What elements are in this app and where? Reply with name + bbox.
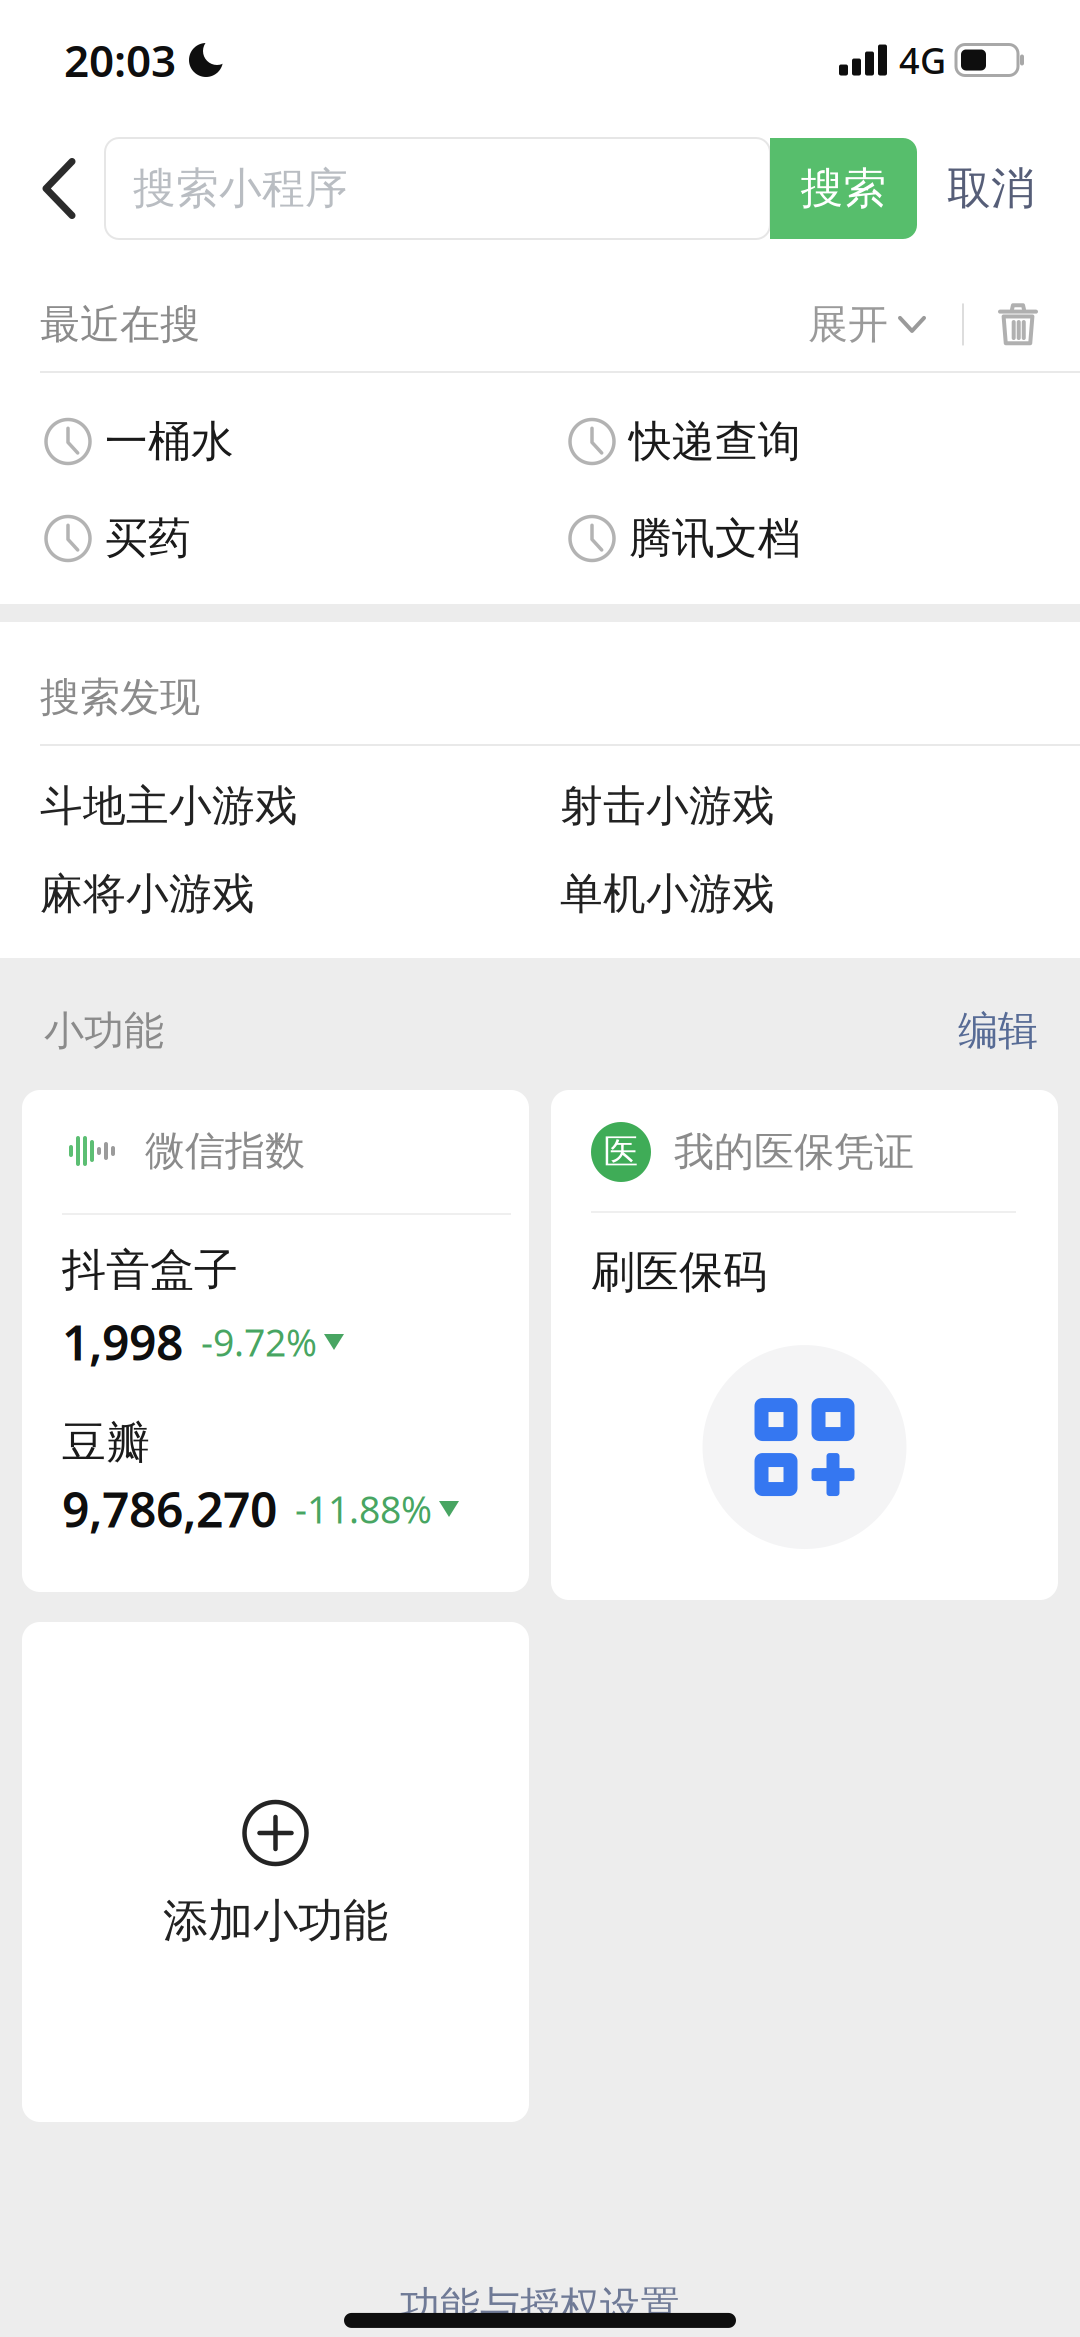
button[interactable]: 展开: [808, 300, 924, 349]
button[interactable]: 清空搜索记录: [1000, 304, 1080, 344]
staticText: 医: [603, 1131, 638, 1173]
staticText: 麻将小游戏: [40, 868, 255, 920]
staticText: 豆瓣: [62, 1416, 150, 1470]
staticText: 编辑: [958, 1006, 1038, 1055]
staticText: 斗地主小游戏: [40, 780, 298, 832]
button[interactable]: 单机小游戏: [560, 868, 775, 920]
staticText: 腾讯文档: [629, 512, 801, 565]
staticText: -9.72%: [201, 1317, 317, 1367]
staticText: 功能与授权设置: [400, 2282, 680, 2331]
staticText: 20:03: [64, 31, 176, 89]
staticText: 取消: [947, 161, 1035, 215]
staticText: 单机小游戏: [560, 868, 775, 920]
staticText: 4G: [899, 36, 946, 84]
staticText: 刷医保码: [591, 1245, 767, 1299]
button[interactable]: 微信指数: [22, 1090, 529, 1592]
staticText: 射击小游戏: [560, 780, 775, 832]
button[interactable]: 编辑: [958, 1006, 1080, 1055]
staticText: -11.88%: [295, 1484, 432, 1534]
staticText: 添加小功能: [163, 1893, 388, 1949]
button[interactable]: 腾讯文档: [570, 512, 801, 565]
staticText: 抖音盒子: [62, 1243, 238, 1297]
staticText: 搜索: [800, 162, 886, 215]
button[interactable]: 搜索小程序: [105, 138, 770, 239]
button[interactable]: 射击小游戏: [560, 780, 775, 832]
staticText: 微信指数: [145, 1126, 305, 1175]
button[interactable]: 买药: [46, 512, 191, 565]
staticText: 我的医保凭证: [674, 1127, 914, 1176]
staticText: 买药: [105, 512, 191, 565]
button[interactable]: 一桶水: [46, 415, 234, 468]
staticText: 9,786,270: [62, 1477, 277, 1541]
button[interactable]: 搜索: [770, 138, 917, 239]
staticText: 小功能: [44, 1006, 164, 1055]
button[interactable]: 功能与授权设置: [400, 2288, 680, 2337]
button[interactable]: 斗地主小游戏: [40, 780, 298, 832]
button[interactable]: 医: [551, 1090, 1058, 1600]
button[interactable]: 取消: [947, 161, 1080, 215]
staticText: 搜索发现: [40, 673, 200, 722]
staticText: 一桶水: [105, 415, 234, 468]
staticText: 展开: [808, 300, 888, 349]
button[interactable]: 返回: [0, 161, 88, 215]
button[interactable]: 快递查询: [570, 415, 801, 468]
staticText: 1,998: [62, 1310, 183, 1374]
staticText: 快递查询: [629, 415, 801, 468]
staticText: 最近在搜: [40, 300, 200, 349]
button[interactable]: 添加小功能: [22, 1622, 529, 2122]
button[interactable]: 麻将小游戏: [40, 868, 255, 920]
staticText: 搜索小程序: [133, 162, 348, 215]
